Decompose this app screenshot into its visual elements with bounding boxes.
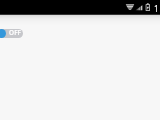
- button[interactable]: Toggle off: [0, 29, 23, 38]
- staticText: 1: [154, 3, 159, 14]
- staticText: OFF: [9, 28, 22, 37]
